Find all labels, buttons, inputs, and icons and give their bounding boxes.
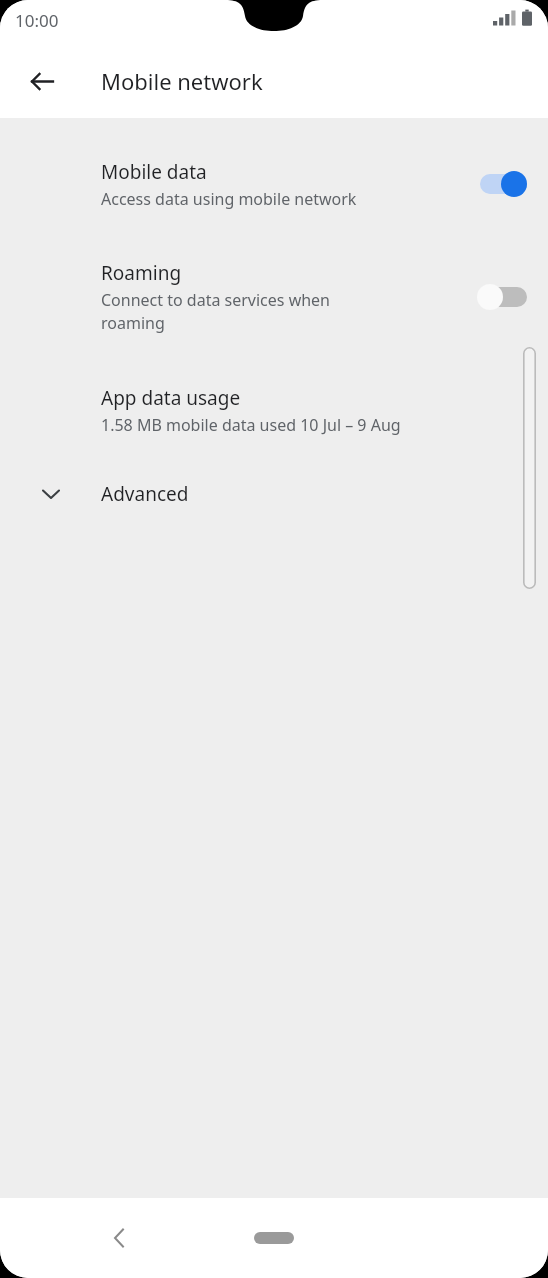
button[interactable]: Back <box>18 57 66 105</box>
staticText: App data usage <box>101 385 241 411</box>
button[interactable]: Back <box>96 1214 144 1262</box>
staticText: Mobile data <box>101 159 207 185</box>
staticText: 10:00 <box>15 9 59 32</box>
staticText: Connect to data services when roaming <box>101 289 331 334</box>
staticText: 1.58 MB mobile data used 10 Jul – 9 Aug <box>101 414 401 436</box>
button[interactable]: Toggle on <box>476 169 534 199</box>
button[interactable]: App data usage <box>0 367 548 453</box>
staticText: Mobile network <box>101 66 263 96</box>
staticText: Advanced <box>101 481 189 507</box>
button[interactable]: Roaming <box>0 241 548 353</box>
button[interactable]: Mobile data <box>0 141 548 227</box>
button[interactable]: Toggle off <box>476 282 534 312</box>
button[interactable]: Home <box>242 1221 306 1255</box>
button[interactable]: Advanced <box>0 463 548 525</box>
staticText: Roaming <box>101 260 182 286</box>
staticText: Access data using mobile network <box>101 188 357 210</box>
